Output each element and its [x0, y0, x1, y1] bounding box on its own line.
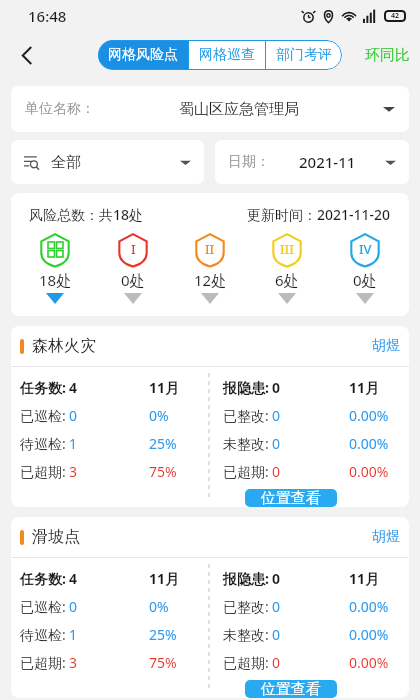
staticText: 已超期: [20, 462, 66, 481]
staticText: 滑坡点 [32, 527, 80, 547]
staticText: 4 [69, 378, 78, 397]
staticText: 0.00% [349, 462, 389, 481]
staticText: IV [359, 240, 372, 258]
staticText: III [280, 240, 294, 258]
staticText: 12处 [194, 270, 227, 290]
staticText: I [131, 240, 136, 258]
staticText: 0 [69, 406, 78, 425]
staticText: 已超期: [223, 653, 269, 672]
staticText: 全部 [51, 153, 81, 172]
staticText: 已超期: [20, 653, 66, 672]
staticText: 0 [272, 434, 281, 453]
staticText: 0 [272, 462, 281, 481]
button[interactable]: 滑坡点 [11, 517, 409, 557]
staticText: 18处 [39, 270, 72, 290]
button[interactable]: III [254, 232, 320, 304]
staticText: 75% [149, 462, 177, 481]
staticText: 0.00% [349, 653, 389, 672]
staticText: 任务数: [20, 378, 66, 397]
staticText: 已巡检: [20, 597, 66, 616]
button[interactable]: 全部 [11, 140, 204, 184]
button[interactable]: 单位名称： [11, 86, 409, 132]
staticText: 11月 [149, 569, 180, 588]
button[interactable]: 位置查看 [245, 680, 337, 698]
staticText: 更新时间：2021-11-20 [247, 205, 391, 224]
button[interactable]: 网格风险点 [98, 40, 188, 70]
staticText: 任务数: [20, 569, 66, 588]
staticText: 0.00% [349, 406, 389, 425]
staticText: 报隐患: [223, 569, 269, 588]
button[interactable]: 森林火灾 [11, 326, 409, 366]
staticText: 11月 [349, 569, 380, 588]
staticText: 胡煜 [372, 337, 400, 355]
staticText: 蜀山区应急管理局 [179, 100, 299, 119]
staticText: 未整改: [223, 625, 269, 644]
staticText: 1 [69, 625, 78, 644]
button[interactable]: Back [8, 36, 46, 74]
staticText: 部门考评 [276, 46, 332, 64]
staticText: 0.00% [349, 625, 389, 644]
staticText: 日期： [228, 153, 270, 171]
button[interactable]: I [100, 232, 166, 304]
staticText: 0 [272, 569, 281, 588]
button[interactable]: 部门考评 [266, 40, 342, 70]
staticText: 0.00% [349, 597, 389, 616]
staticText: 森林火灾 [32, 336, 96, 356]
staticText: 报隐患: [223, 378, 269, 397]
staticText: 已巡检: [20, 406, 66, 425]
button[interactable]: 日期： [215, 140, 409, 184]
staticText: 待巡检: [20, 434, 66, 453]
staticText: 0 [272, 653, 281, 672]
staticText: 网格风险点 [108, 46, 178, 64]
staticText: 1 [69, 434, 78, 453]
staticText: 42 [391, 11, 400, 21]
staticText: 11月 [149, 378, 180, 397]
staticText: 0 [272, 406, 281, 425]
staticText: 0% [149, 597, 169, 616]
staticText: 0 [69, 597, 78, 616]
staticText: 单位名称： [25, 100, 95, 118]
button[interactable]: II [177, 232, 243, 304]
button[interactable]: 18处 [22, 232, 88, 304]
staticText: 0 [272, 625, 281, 644]
staticText: 75% [149, 653, 177, 672]
staticText: 位置查看 [261, 680, 321, 698]
staticText: II [205, 240, 215, 258]
staticText: 风险总数：共18处 [29, 205, 144, 224]
staticText: 2021-11 [299, 152, 356, 172]
staticText: 0% [149, 406, 169, 425]
staticText: 25% [149, 625, 177, 644]
staticText: 0 [272, 378, 281, 397]
staticText: 待巡检: [20, 625, 66, 644]
staticText: 未整改: [223, 434, 269, 453]
staticText: 3 [69, 653, 78, 672]
staticText: 0.00% [349, 434, 389, 453]
staticText: 0处 [353, 270, 377, 290]
button[interactable]: 网格巡查 [189, 40, 265, 70]
staticText: 已整改: [223, 406, 269, 425]
staticText: 6处 [275, 270, 299, 290]
staticText: 25% [149, 434, 177, 453]
staticText: 4 [69, 569, 78, 588]
staticText: 0 [272, 597, 281, 616]
button[interactable]: IV [332, 232, 398, 304]
staticText: 位置查看 [261, 489, 321, 507]
staticText: 已整改: [223, 597, 269, 616]
button[interactable]: 环同比 [365, 46, 410, 65]
button[interactable]: 位置查看 [245, 489, 337, 507]
staticText: 16:48 [28, 6, 67, 26]
staticText: 网格巡查 [199, 46, 255, 64]
staticText: 3 [69, 462, 78, 481]
staticText: 胡煜 [372, 528, 400, 546]
staticText: 0处 [121, 270, 145, 290]
staticText: 已超期: [223, 462, 269, 481]
staticText: 11月 [349, 378, 380, 397]
